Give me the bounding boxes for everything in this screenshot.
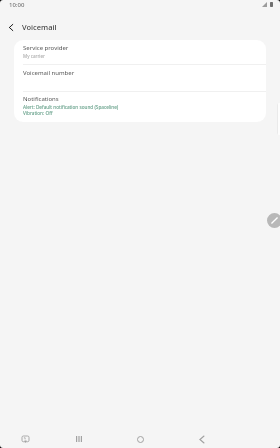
staticText: 10:00 [9,1,25,9]
button[interactable]: Edge panel handle [277,103,280,135]
button[interactable]: Hide keyboard [14,428,36,448]
button[interactable]: Voicemail number [14,65,266,91]
staticText: Service provider [23,44,69,52]
staticText: Notifications [23,95,59,103]
staticText: Voicemail [22,22,57,32]
button[interactable]: Edit [267,213,280,228]
staticText: Alert: Default notification sound (Space… [23,104,119,110]
staticText: My carrier [23,53,45,59]
button[interactable]: Back [191,428,213,448]
button[interactable]: Service provider [14,40,266,64]
button[interactable]: Home [129,428,151,448]
button[interactable]: Notifications [14,91,266,122]
button[interactable]: Recents [68,428,90,448]
button[interactable]: Navigate up [2,18,20,36]
staticText: Vibration: Off [23,110,53,116]
staticText: Voicemail number [23,69,75,77]
